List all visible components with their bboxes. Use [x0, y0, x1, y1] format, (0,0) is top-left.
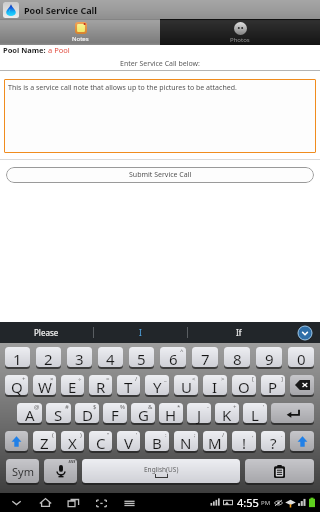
staticText: Y — [153, 377, 162, 397]
button[interactable]: Back — [9, 495, 24, 510]
staticText: ( — [52, 431, 54, 439]
button[interactable]: 9 — [256, 347, 282, 367]
button[interactable]: Clipboard — [245, 459, 314, 483]
staticText: < — [192, 375, 196, 383]
staticText: ] — [281, 375, 283, 383]
staticText: a Pool — [48, 45, 70, 55]
button[interactable]: K — [215, 403, 239, 423]
button[interactable]: U — [174, 375, 198, 395]
button[interactable]: Home — [38, 495, 53, 510]
staticText: L — [251, 405, 259, 425]
staticText: & — [148, 403, 153, 411]
button[interactable]: B — [145, 431, 169, 451]
button[interactable]: I — [203, 375, 227, 395]
button[interactable]: More suggestions — [290, 322, 320, 343]
button[interactable]: Notes — [0, 19, 160, 45]
staticText: / — [222, 431, 225, 439]
staticText: : — [165, 431, 167, 439]
staticText: 0 — [297, 349, 306, 369]
staticText: S — [54, 405, 63, 425]
button[interactable]: 0 — [288, 347, 314, 367]
button[interactable]: J — [187, 403, 211, 423]
staticText: Enter Service Call below: — [0, 59, 320, 69]
button[interactable]: Sym — [6, 459, 39, 483]
staticText: ^ — [180, 347, 184, 355]
staticText: ' — [263, 403, 265, 411]
button[interactable]: R — [89, 375, 112, 395]
button[interactable]: M — [203, 431, 227, 451]
staticText: E — [68, 377, 77, 397]
staticText: F — [111, 405, 119, 425]
button[interactable]: Shift — [290, 431, 314, 451]
staticText: $ — [93, 403, 97, 411]
button[interactable]: H — [159, 403, 183, 423]
button[interactable]: English(US) — [82, 459, 240, 483]
button[interactable]: L — [243, 403, 267, 423]
button[interactable]: D — [75, 403, 99, 423]
button[interactable]: 2 — [36, 347, 61, 367]
button[interactable]: Q — [5, 375, 28, 395]
button[interactable]: 3 — [67, 347, 92, 367]
button[interactable]: Menu — [122, 495, 137, 510]
staticText: I — [139, 327, 142, 338]
button[interactable]: 4 — [98, 347, 123, 367]
button[interactable]: V — [117, 431, 140, 451]
staticText: ; — [194, 431, 196, 439]
button[interactable]: Photos — [160, 19, 320, 45]
button[interactable]: Please — [0, 322, 93, 343]
staticText: Please — [34, 327, 59, 338]
staticText: + — [22, 375, 26, 383]
button[interactable]: X — [61, 431, 84, 451]
button[interactable]: ! — [232, 431, 256, 451]
staticText: C — [96, 433, 106, 453]
staticText: G — [138, 405, 149, 425]
button[interactable]: Enter — [271, 403, 314, 423]
staticText: K — [222, 405, 232, 425]
staticText: / — [135, 375, 138, 383]
staticText: 9 — [265, 349, 274, 369]
button[interactable]: P — [261, 375, 285, 395]
button[interactable]: 8 — [224, 347, 250, 367]
staticText: J — [197, 405, 202, 425]
staticText: # — [65, 403, 69, 411]
button[interactable]: F — [103, 403, 127, 423]
button[interactable]: Screenshot — [94, 495, 109, 510]
staticText: 1 — [13, 349, 22, 369]
button[interactable]: 1 — [5, 347, 30, 367]
button[interactable]: Shift — [5, 431, 28, 451]
staticText: 3 — [75, 349, 84, 369]
button[interactable]: ? — [261, 431, 285, 451]
staticText: @ — [34, 403, 40, 411]
button[interactable]: Delete — [290, 375, 314, 395]
staticText: A — [25, 405, 35, 425]
staticText: V — [124, 433, 134, 453]
staticText: P — [268, 377, 278, 397]
staticText: D — [82, 405, 93, 425]
button[interactable]: I — [94, 322, 187, 343]
button[interactable]: 7 — [192, 347, 218, 367]
button[interactable]: Voice input — [44, 459, 77, 483]
button[interactable]: 5 — [129, 347, 154, 367]
staticText: _ — [164, 375, 167, 383]
staticText: 5 — [137, 349, 146, 369]
button[interactable]: This is a service call note that allows … — [4, 79, 316, 153]
button[interactable]: Recents — [66, 495, 81, 510]
button[interactable]: Y — [145, 375, 169, 395]
button[interactable]: C — [89, 431, 112, 451]
button[interactable]: T — [117, 375, 140, 395]
staticText: = — [106, 375, 110, 383]
button[interactable]: Z — [33, 431, 56, 451]
button[interactable]: E — [61, 375, 84, 395]
button[interactable]: Submit Service Call — [6, 167, 314, 183]
button[interactable]: S — [46, 403, 71, 423]
staticText: 4 — [106, 349, 115, 369]
button[interactable]: If — [188, 322, 290, 343]
button[interactable]: W — [33, 375, 56, 395]
staticText: 2 — [44, 349, 53, 369]
button[interactable]: O — [232, 375, 256, 395]
button[interactable]: 6 — [160, 347, 186, 367]
button[interactable]: G — [131, 403, 155, 423]
staticText: N — [180, 433, 192, 453]
button[interactable]: N — [174, 431, 198, 451]
button[interactable]: A — [17, 403, 42, 423]
